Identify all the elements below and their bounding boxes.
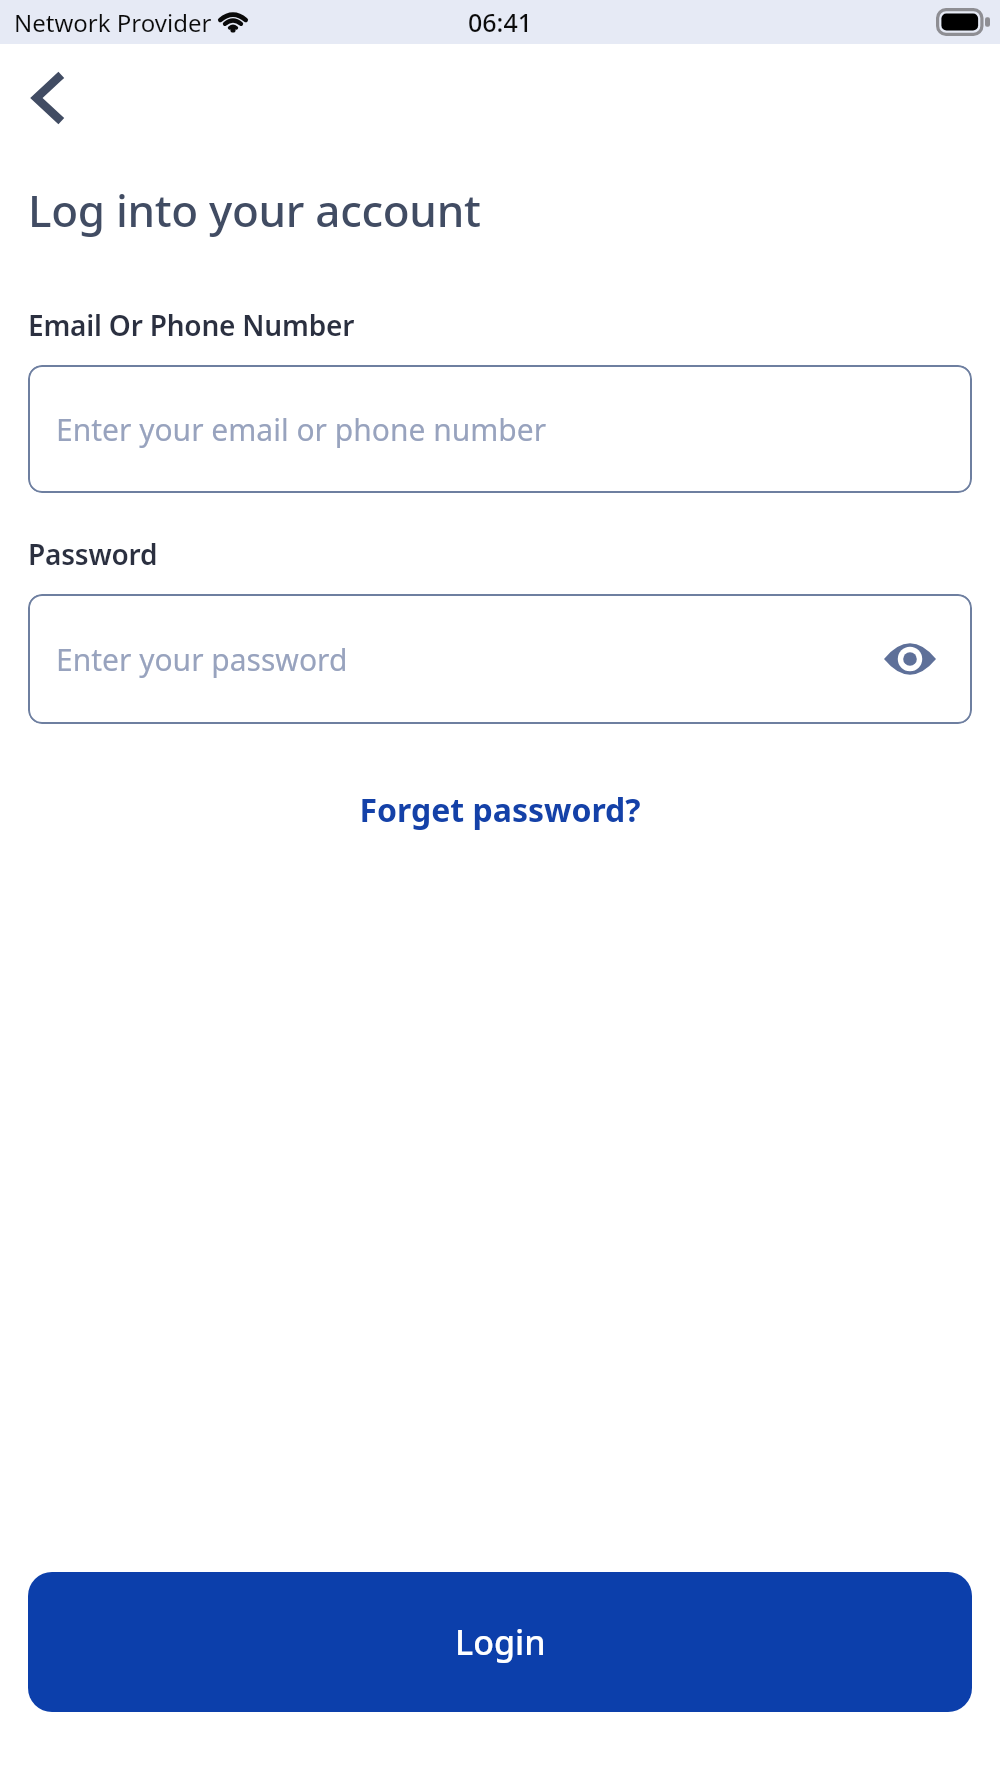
button[interactable]: Forget password? [343,780,657,840]
button[interactable]: Enter your password [28,594,972,724]
button[interactable]: Enter your email or phone number [28,365,972,493]
button[interactable]: Login [28,1572,972,1712]
staticText: Enter your password [56,639,348,680]
staticText: Log into your account [28,180,481,240]
staticText: 06:41 [468,5,533,39]
staticText: Email Or Phone Number [28,306,355,344]
staticText: Enter your email or phone number [56,409,547,450]
staticText: Login [455,1619,546,1665]
staticText: Network Provider [14,6,212,39]
button[interactable]: Back [14,64,82,132]
staticText: Password [28,535,158,573]
button[interactable]: Show password [880,629,940,689]
